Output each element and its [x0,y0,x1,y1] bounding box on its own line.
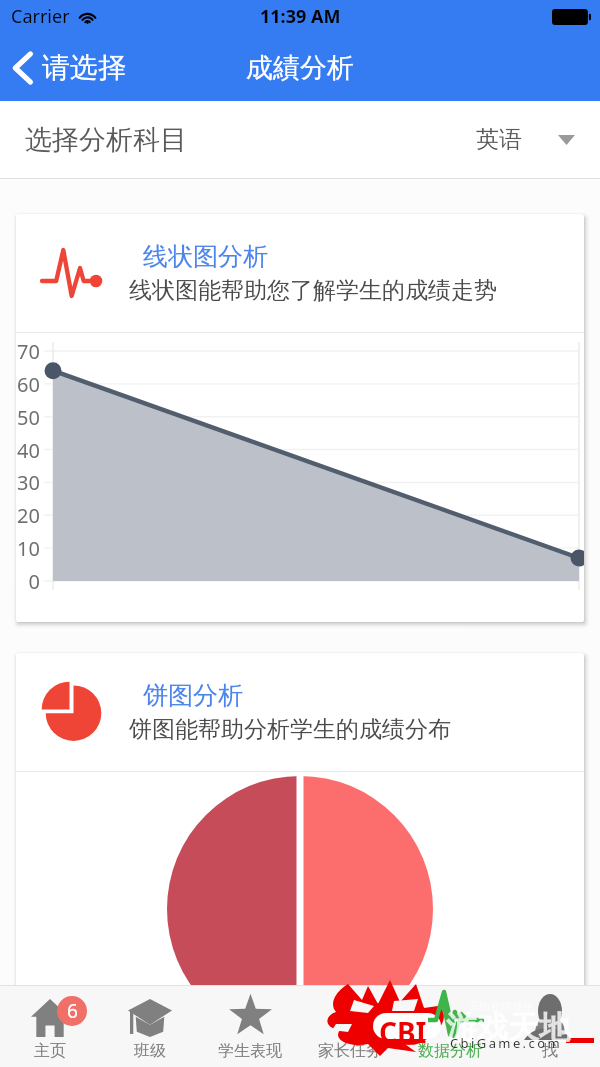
other: Class [128,999,172,1037]
staticText: 线状图能帮助您了解学生的成绩走势 [129,276,497,305]
staticText: 11:39 AM [260,4,341,29]
staticText: 请选择 [42,50,126,85]
staticText: 50 [16,404,40,431]
staticText: 60 [16,371,40,398]
button[interactable]: Class [100,986,200,1067]
staticText: CbiGame.com [450,1034,562,1052]
staticText: 40 [16,437,40,464]
button[interactable]: Pie chart [16,653,584,1067]
staticText: 30 [16,469,40,496]
other: Parent tasks [330,998,370,1038]
staticText: CBI [379,1013,427,1051]
staticText: 家长任务 [318,1041,382,1061]
staticText: 学生表现 [218,1041,282,1061]
other: Pie chart [42,682,102,742]
button[interactable]: Parent tasks [300,986,400,1067]
other: Data analysis [430,998,470,1038]
staticText: 0 [16,568,40,595]
other: Line chart [42,247,102,299]
staticText: 主页 [34,1041,66,1061]
staticText: 6 [67,998,78,1024]
staticText: 找 [542,1041,558,1061]
staticText: 游戏天地 [446,1008,570,1047]
staticText: 70 [16,338,40,365]
staticText: 班级 [134,1041,166,1061]
staticText: 英语 [476,125,522,154]
other: Home [31,999,69,1037]
staticText: 数据分析 [418,1041,482,1061]
staticText: 饼图分析 [143,680,243,711]
button[interactable]: 请选择 [0,44,136,91]
staticText: 10 [16,535,40,562]
staticText: 选择分析科目 [25,123,187,157]
button[interactable]: Line chart [16,214,584,622]
button[interactable]: Student performance [200,986,300,1067]
button[interactable]: Home [0,986,100,1067]
button[interactable]: Data analysis [400,986,500,1067]
other: Profile [530,998,570,1038]
staticText: 20 [16,502,40,529]
staticText: 饼图能帮助分析学生的成绩分布 [129,715,451,744]
staticText: 线状图分析 [143,241,268,272]
staticText: Carrier [11,4,70,29]
button[interactable]: Profile [500,986,600,1067]
staticText: 成績分析 [246,51,354,85]
other: Student performance [228,995,273,1040]
button[interactable]: 选择分析科目 [0,101,600,178]
